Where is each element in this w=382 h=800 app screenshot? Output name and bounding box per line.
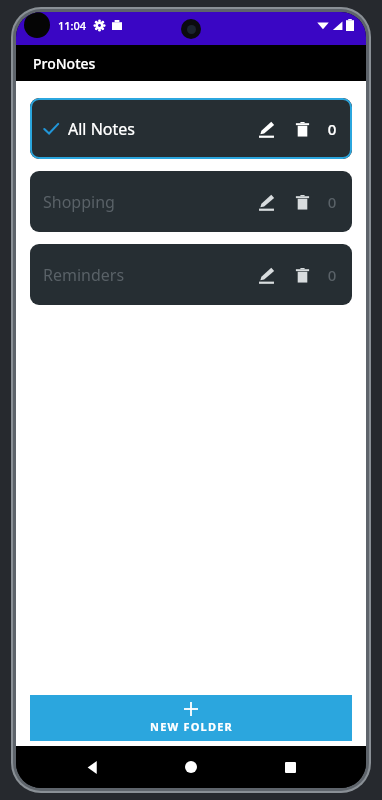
staticText: All Notes — [68, 118, 135, 140]
button[interactable]: All Notes — [30, 98, 352, 159]
button[interactable]: Recent apps — [268, 746, 312, 788]
button[interactable]: Shopping — [30, 171, 352, 232]
button[interactable]: Home — [169, 746, 213, 788]
button[interactable]: Delete folder — [287, 187, 317, 217]
staticText: ProNotes — [33, 54, 96, 73]
button[interactable]: Back — [71, 746, 115, 788]
staticText: 0 — [325, 265, 339, 285]
button[interactable]: NEW FOLDER — [30, 695, 352, 741]
button[interactable]: Delete folder — [287, 260, 317, 290]
button[interactable]: Reminders — [30, 244, 352, 305]
staticText: 0 — [325, 192, 339, 212]
button[interactable]: Rename folder — [251, 114, 281, 144]
staticText: 11:04 — [58, 18, 87, 33]
staticText: Reminders — [43, 264, 125, 286]
button[interactable]: Rename folder — [251, 187, 281, 217]
staticText: Shopping — [43, 191, 115, 213]
staticText: NEW FOLDER — [150, 719, 233, 734]
staticText: 0 — [325, 119, 339, 139]
button[interactable]: Rename folder — [251, 260, 281, 290]
button[interactable]: Delete folder — [287, 114, 317, 144]
